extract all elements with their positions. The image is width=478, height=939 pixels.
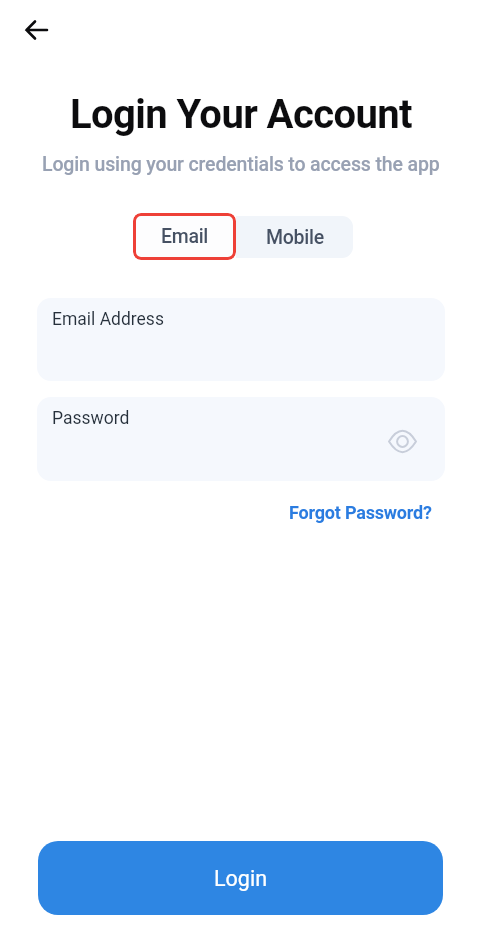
staticText: Mobile (266, 226, 324, 249)
button[interactable]: Mobile (236, 216, 353, 258)
staticText: Login Your Account (70, 91, 412, 138)
staticText: Login (214, 866, 268, 891)
button[interactable]: Email (133, 213, 236, 260)
button[interactable]: Email Address (37, 298, 445, 381)
button[interactable]: Login (38, 841, 443, 915)
button[interactable]: Password (37, 397, 445, 481)
button[interactable]: Forgot Password? (289, 502, 432, 523)
staticText: Email (161, 225, 209, 248)
staticText: Email Address (52, 309, 164, 330)
staticText: Password (52, 408, 130, 429)
staticText: Login using your credentials to access t… (42, 153, 440, 176)
button[interactable] (20, 14, 52, 46)
button[interactable] (387, 426, 417, 456)
